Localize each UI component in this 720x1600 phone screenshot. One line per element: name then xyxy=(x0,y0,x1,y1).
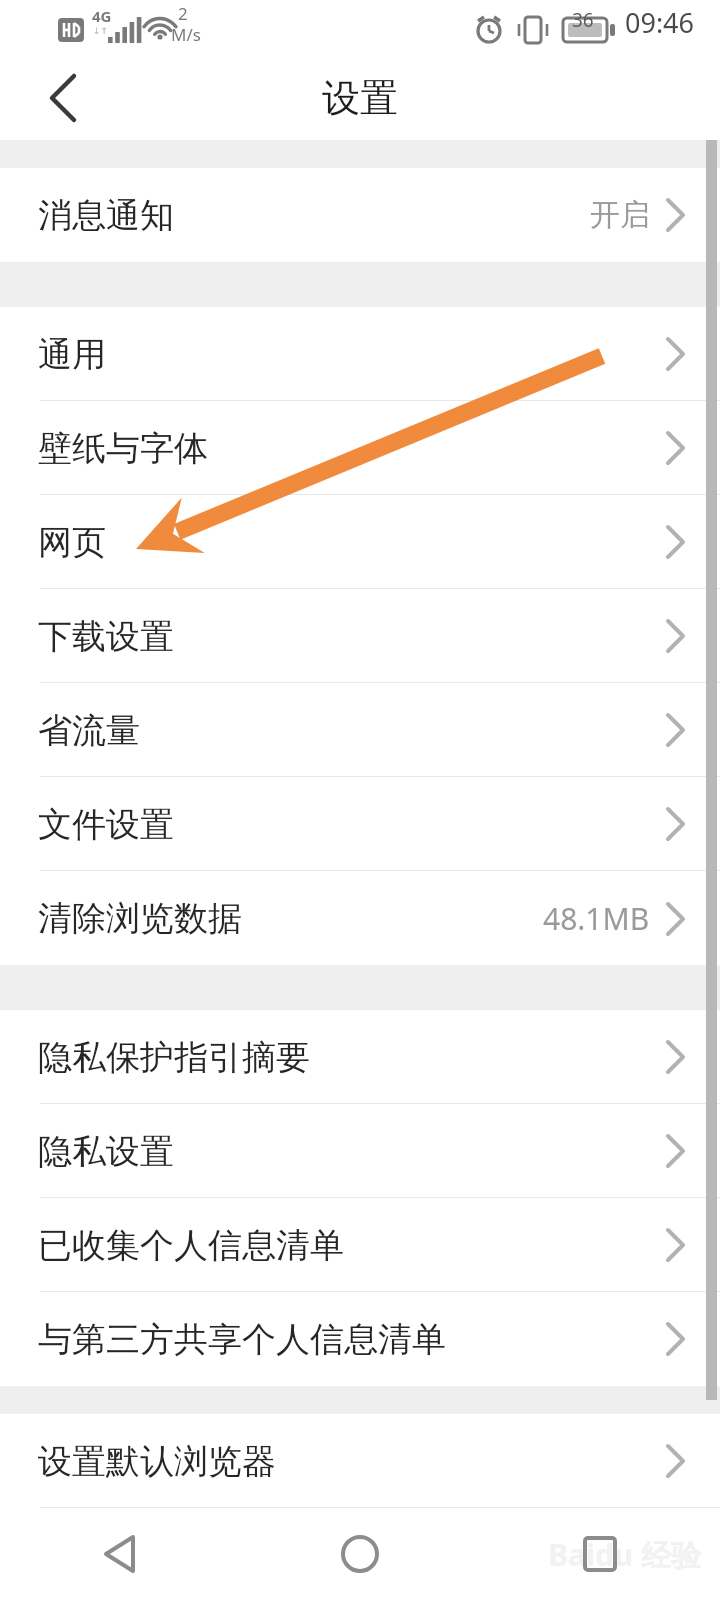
button[interactable]: Back xyxy=(0,1508,240,1600)
button[interactable]: Back xyxy=(22,60,98,136)
staticText: ↓↑ xyxy=(93,26,109,36)
staticText: 设置默认浏览器 xyxy=(38,1440,276,1483)
staticText: 2 xyxy=(178,2,188,25)
staticText: 消息通知 xyxy=(38,194,174,237)
button[interactable]: 下载设置 xyxy=(0,589,720,683)
staticText: M/s xyxy=(171,23,201,46)
button[interactable]: 消息通知 xyxy=(0,168,720,262)
staticText: 48.1MB xyxy=(543,898,650,939)
staticText: 省流量 xyxy=(38,709,140,752)
button[interactable]: 网页 xyxy=(0,495,720,589)
button[interactable]: 隐私保护指引摘要 xyxy=(0,1010,720,1104)
staticText: 隐私设置 xyxy=(38,1130,174,1173)
staticText: 设置 xyxy=(322,74,398,122)
staticText: Baidu 经验 xyxy=(548,1534,702,1575)
staticText: 09:46 xyxy=(625,4,695,41)
button[interactable]: 省流量 xyxy=(0,683,720,777)
staticText: 清除浏览数据 xyxy=(38,897,242,940)
staticText: 网页 xyxy=(38,521,106,564)
staticText: 开启 xyxy=(590,196,650,234)
button[interactable]: 清除浏览数据 xyxy=(0,871,720,965)
button[interactable]: 文件设置 xyxy=(0,777,720,871)
button[interactable]: 壁纸与字体 xyxy=(0,401,720,495)
staticText: 已收集个人信息清单 xyxy=(38,1224,344,1267)
staticText: 通用 xyxy=(38,333,106,376)
button[interactable]: 通用 xyxy=(0,307,720,401)
staticText: 36 xyxy=(572,7,594,33)
staticText: 与第三方共享个人信息清单 xyxy=(38,1318,446,1361)
button[interactable]: Home xyxy=(240,1508,480,1600)
button[interactable]: 已收集个人信息清单 xyxy=(0,1198,720,1292)
staticText: 隐私保护指引摘要 xyxy=(38,1036,310,1079)
button[interactable]: 设置默认浏览器 xyxy=(0,1414,720,1508)
button[interactable]: 与第三方共享个人信息清单 xyxy=(0,1292,720,1386)
staticText: 文件设置 xyxy=(38,803,174,846)
button[interactable]: 隐私设置 xyxy=(0,1104,720,1198)
staticText: 下载设置 xyxy=(38,615,174,658)
button[interactable]: Recent apps xyxy=(480,1508,720,1600)
staticText: 4G xyxy=(92,6,112,26)
staticText: 壁纸与字体 xyxy=(38,427,208,470)
